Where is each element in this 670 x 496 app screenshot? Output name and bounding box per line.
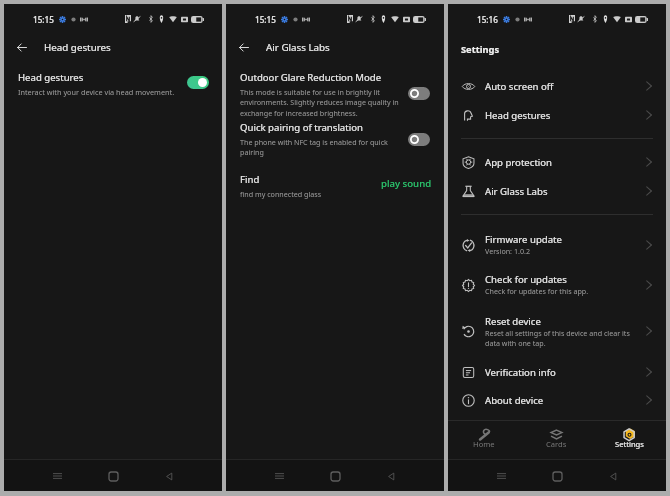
button[interactable]: Outdoor Glare Reduction Mode (226, 71, 444, 119)
button[interactable]: Check for updates (448, 268, 666, 301)
staticText: 15:16 (477, 14, 498, 25)
button[interactable]: Firmware update (448, 228, 666, 261)
button[interactable]: Find (226, 173, 444, 201)
button[interactable]: Back (381, 466, 401, 486)
staticText: Auto screen off (485, 80, 554, 93)
staticText: Firmware update (485, 233, 562, 246)
button[interactable]: Settings (593, 421, 666, 459)
staticText: Check for updates (485, 273, 567, 286)
staticText: About device (485, 394, 544, 407)
button[interactable]: Recents (491, 466, 511, 486)
staticText: Cards (546, 439, 567, 449)
button[interactable]: Auto screen off (448, 73, 666, 99)
button[interactable]: Cards (520, 421, 593, 459)
staticText: Home (473, 439, 495, 449)
button[interactable]: Head gestures (448, 102, 666, 128)
staticText: Head gestures (485, 109, 551, 122)
button[interactable]: Verification info (448, 359, 666, 385)
button[interactable]: Home (547, 466, 567, 486)
staticText: Interact with your device via head movem… (18, 87, 175, 97)
button[interactable]: Home (103, 466, 123, 486)
staticText: Verification info (485, 366, 556, 379)
button[interactable]: Home (448, 421, 520, 459)
staticText: Outdoor Glare Reduction Mode (240, 71, 382, 84)
staticText: 15:15 (33, 14, 54, 25)
staticText: Settings (615, 439, 644, 449)
button[interactable]: Toggle off (408, 133, 430, 146)
button[interactable]: Back (603, 466, 623, 486)
button[interactable]: Air Glass Labs (448, 178, 666, 204)
staticText: This mode is suitable for use in brightl… (240, 87, 401, 118)
staticText: Settings (461, 43, 500, 56)
button[interactable]: App protection (448, 149, 666, 175)
button[interactable]: Head gestures on (187, 76, 209, 89)
button[interactable]: Back (13, 38, 31, 56)
staticText: Air Glass Labs (266, 41, 330, 54)
button[interactable]: Reset device (448, 310, 666, 352)
button[interactable]: Home (325, 466, 345, 486)
button[interactable]: About device (448, 387, 666, 413)
staticText: The phone with NFC tag is enabled for qu… (240, 137, 401, 157)
staticText: Air Glass Labs (485, 185, 548, 198)
staticText: Check for updates for this app. (485, 286, 589, 296)
staticText: Version: 1.0.2 (485, 246, 530, 256)
staticText: App protection (485, 156, 553, 169)
staticText: play sound (381, 177, 432, 190)
staticText: Quick pairing of translation (240, 121, 363, 134)
staticText: Reset all settings of this device and cl… (485, 328, 640, 348)
button[interactable]: Back (159, 466, 179, 486)
button[interactable]: Quick pairing of translation (226, 121, 444, 159)
button[interactable]: Back (235, 38, 253, 56)
button[interactable]: Toggle off (408, 87, 430, 100)
staticText: Head gestures (18, 71, 84, 84)
staticText: Head gestures (44, 41, 111, 54)
staticText: Reset device (485, 315, 541, 328)
button[interactable]: Head gestures (4, 70, 222, 98)
button[interactable]: Recents (269, 466, 289, 486)
staticText: find my connected glass (240, 189, 322, 199)
button[interactable]: Recents (47, 466, 67, 486)
staticText: 15:15 (255, 14, 276, 25)
staticText: Find (240, 173, 260, 186)
